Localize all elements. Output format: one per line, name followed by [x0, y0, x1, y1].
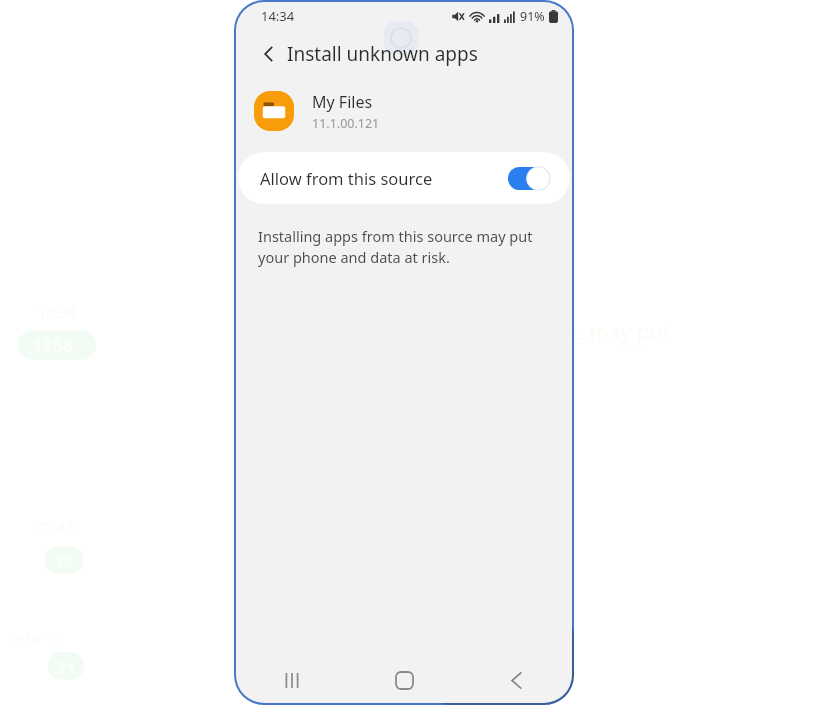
- staticText: 91%: [520, 8, 545, 25]
- staticText: 11.1.00.121: [312, 115, 380, 132]
- button[interactable]: Allow from this source: [238, 152, 570, 204]
- button[interactable]: Recent apps: [236, 657, 348, 703]
- staticText: My Files: [312, 91, 373, 113]
- button[interactable]: My Files: [236, 78, 572, 144]
- staticText: 14:34: [261, 7, 295, 25]
- staticText: e may put: [572, 318, 671, 347]
- staticText: Install unknown apps: [287, 41, 478, 67]
- button[interactable]: Back: [460, 657, 572, 703]
- staticText: Allow from this source: [260, 167, 433, 189]
- button[interactable]: Back: [252, 37, 286, 71]
- staticText: Installing apps from this source may put…: [258, 226, 542, 268]
- button[interactable]: Home: [348, 657, 460, 703]
- button[interactable]: Allow from this source toggle: [508, 167, 550, 190]
